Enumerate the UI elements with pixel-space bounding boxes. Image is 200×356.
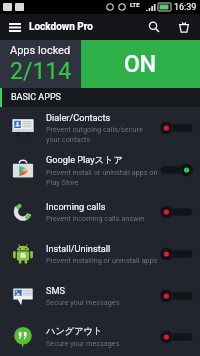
- button[interactable]: Disabled: [160, 330, 193, 344]
- staticText: Google Playストア: [46, 154, 123, 166]
- button[interactable]: Disabled: [160, 205, 193, 219]
- staticText: Lockdown Pro: [29, 21, 93, 33]
- staticText: 2/114: [10, 58, 72, 85]
- button[interactable]: ON: [81, 40, 200, 88]
- button[interactable]: Disabled: [160, 247, 193, 261]
- staticText: Secure your messages: [46, 339, 120, 348]
- staticText: Prevent installing or uninstall apps: [46, 256, 158, 265]
- staticText: BASIC APPS: [11, 92, 61, 103]
- button[interactable]: Dialer/Contacts: [0, 107, 200, 149]
- staticText: Prevent incoming calls answer: [46, 214, 145, 223]
- button[interactable]: Search: [139, 14, 169, 40]
- button[interactable]: Incoming calls: [0, 191, 200, 233]
- button[interactable]: Menu: [0, 14, 29, 40]
- staticText: Prevent outgoing calls/secure your conta…: [46, 125, 158, 144]
- staticText: Secure your messages: [46, 298, 120, 307]
- staticText: 16:39: [174, 2, 197, 13]
- staticText: Incoming calls: [46, 201, 106, 212]
- button[interactable]: Enabled: [160, 163, 193, 177]
- button[interactable]: Delete: [169, 14, 199, 40]
- staticText: Prevent install or uninstall apps on Pla…: [46, 168, 158, 187]
- button[interactable]: Disabled: [160, 289, 193, 303]
- button[interactable]: Install/Uninstall: [0, 233, 200, 275]
- staticText: Apps locked: [10, 44, 71, 57]
- staticText: SMS: [46, 285, 65, 296]
- staticText: LTE: [130, 1, 140, 8]
- staticText: Dialer/Contacts: [46, 112, 111, 123]
- button[interactable]: Disabled: [160, 121, 193, 135]
- staticText: ハングアウト: [46, 325, 103, 337]
- button[interactable]: Google Playストア: [0, 149, 200, 191]
- staticText: ON: [124, 51, 157, 78]
- button[interactable]: ハングアウト: [0, 317, 200, 356]
- staticText: Install/Uninstall: [46, 243, 111, 254]
- button[interactable]: SMS: [0, 275, 200, 317]
